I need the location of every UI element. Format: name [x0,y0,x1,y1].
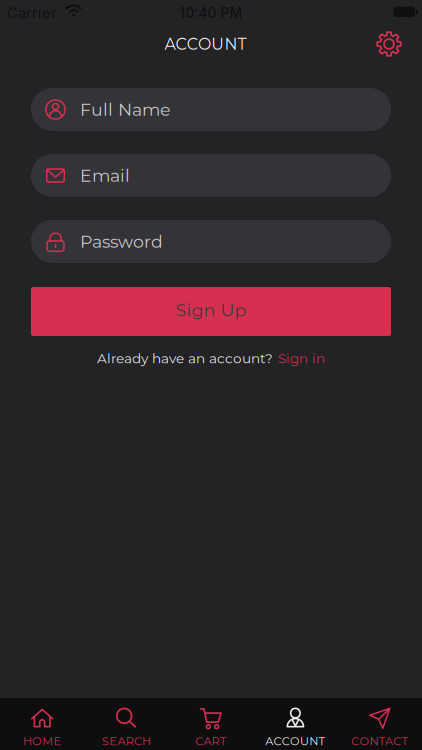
staticText: Sign in [278,350,325,367]
staticText: 10:40 PM [179,5,242,21]
button[interactable]: CART [169,703,253,745]
button[interactable] [376,31,402,57]
staticText: Already have an account? [97,350,273,367]
button[interactable]: Sign Up [31,287,391,336]
staticText: Sign Up [175,299,246,321]
button[interactable]: Email [31,154,391,197]
button[interactable]: CONTACT [338,703,422,745]
button[interactable]: Sign in [278,350,325,367]
staticText: Full Name [80,99,170,120]
staticText: CART [195,734,227,748]
button[interactable]: ACCOUNT [253,703,338,745]
button[interactable]: Password [31,220,391,263]
staticText: ACCOUNT [164,34,247,54]
staticText: SEARCH [102,734,151,748]
staticText: Email [80,165,130,186]
staticText: HOME [23,734,61,748]
button[interactable]: HOME [0,703,84,745]
staticText: Carrier [7,4,57,22]
staticText: CONTACT [351,734,408,748]
staticText: Password [80,231,163,252]
button[interactable]: SEARCH [84,703,169,745]
staticText: ACCOUNT [265,734,325,748]
button[interactable]: Full Name [31,88,391,131]
